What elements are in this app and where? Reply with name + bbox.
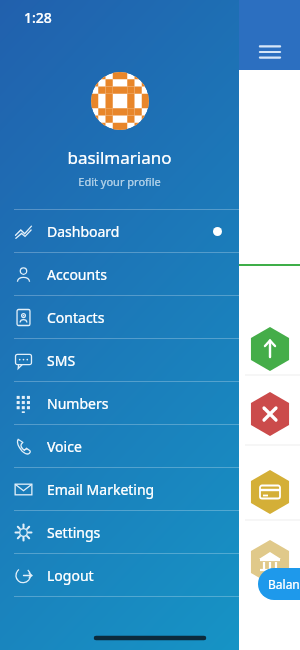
staticText: Numbers [47, 394, 109, 413]
staticText: Voice [47, 437, 82, 456]
button[interactable]: Deposits [248, 327, 292, 371]
button[interactable]: Contacts [0, 296, 239, 338]
staticText: Email Marketing [47, 480, 155, 499]
staticText: Settings [47, 523, 101, 542]
button[interactable]: Card [248, 470, 292, 514]
button[interactable]: Profile picture [91, 72, 149, 130]
staticText: Logout [47, 566, 94, 585]
staticText: Contacts [47, 308, 105, 327]
staticText: Dashboard [47, 222, 120, 241]
staticText: Bounced [32, 286, 70, 298]
button[interactable]: Bank [248, 540, 292, 584]
button[interactable]: Open navigation menu [256, 38, 284, 66]
staticText: basilmariano [0, 146, 239, 169]
staticText: Balance [268, 576, 300, 592]
button[interactable]: Logout [0, 554, 239, 596]
button[interactable]: Edit your profile [0, 174, 239, 189]
button[interactable]: Dashboard [0, 210, 239, 252]
button[interactable]: Failed [248, 392, 292, 436]
staticText: Accounts [47, 265, 107, 284]
button[interactable]: Numbers [0, 382, 239, 424]
button[interactable]: Balance [258, 568, 300, 600]
staticText: Jun 30 [38, 268, 62, 279]
staticText: 1:28 [24, 8, 52, 27]
button[interactable]: Settings [0, 511, 239, 553]
button[interactable]: Accounts [0, 253, 239, 295]
button[interactable]: Voice [0, 425, 239, 467]
button[interactable]: SMS [0, 339, 239, 381]
button[interactable]: Email Marketing [0, 468, 239, 510]
staticText: SMS [47, 351, 76, 370]
